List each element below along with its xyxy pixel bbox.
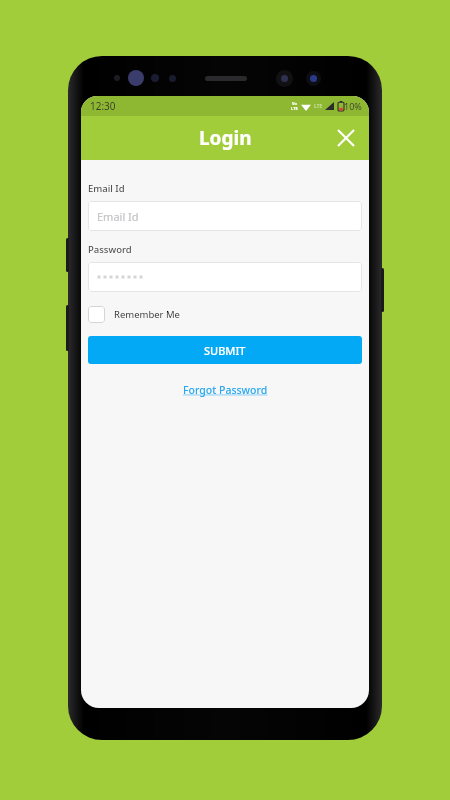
button[interactable]: Forgot Password [183, 383, 268, 397]
staticText: 12:30 [90, 99, 116, 113]
staticText: Login [199, 125, 252, 151]
button[interactable]: Remember Me [88, 306, 180, 323]
button[interactable]: Password [88, 262, 362, 292]
staticText: Forgot Password [183, 383, 268, 397]
staticText: Remember Me [114, 308, 180, 321]
staticText: Vo [292, 101, 298, 106]
staticText: SUBMIT [204, 343, 246, 358]
staticText: LTE [314, 103, 323, 110]
button[interactable]: SUBMIT [88, 336, 362, 364]
staticText: Password [88, 243, 132, 256]
staticText: 10% [344, 100, 362, 112]
staticText: LTE [291, 106, 298, 111]
staticText: Email Id [97, 209, 139, 224]
button[interactable]: Close [331, 123, 361, 153]
button[interactable]: Email Id [88, 201, 362, 231]
staticText: Email Id [88, 182, 125, 195]
